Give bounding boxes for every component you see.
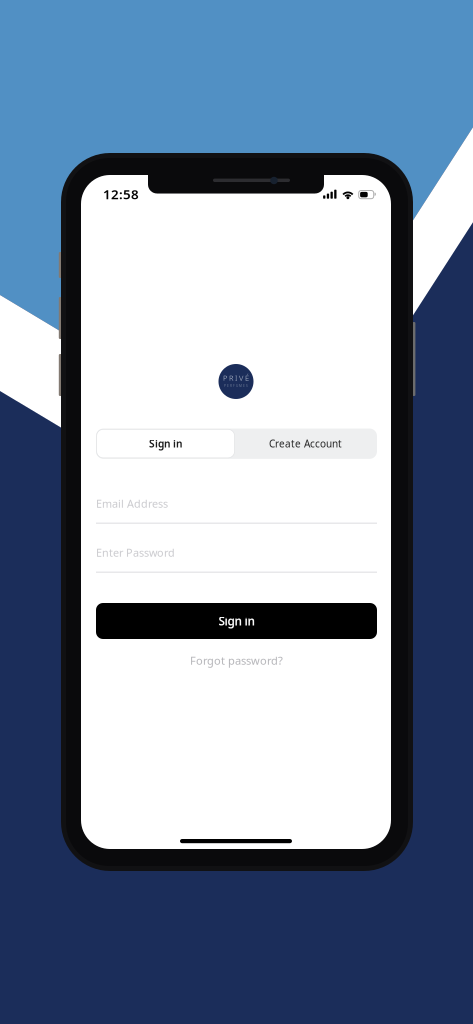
button[interactable]: Create Account: [235, 429, 377, 458]
staticText: P R I V É: [223, 373, 249, 383]
button[interactable]: Sign in: [97, 429, 235, 458]
staticText: Create Account: [269, 437, 342, 450]
staticText: P E R F U M E S: [224, 383, 248, 388]
staticText: 12:58: [103, 185, 139, 203]
staticText: Forgot password?: [190, 653, 283, 668]
staticText: Enter Password: [96, 545, 175, 560]
button[interactable]: Forgot password?: [96, 653, 377, 667]
button[interactable]: Sign in: [96, 603, 377, 639]
staticText: Sign in: [149, 437, 182, 450]
staticText: Sign in: [218, 613, 254, 629]
staticText: Email Address: [96, 496, 168, 511]
